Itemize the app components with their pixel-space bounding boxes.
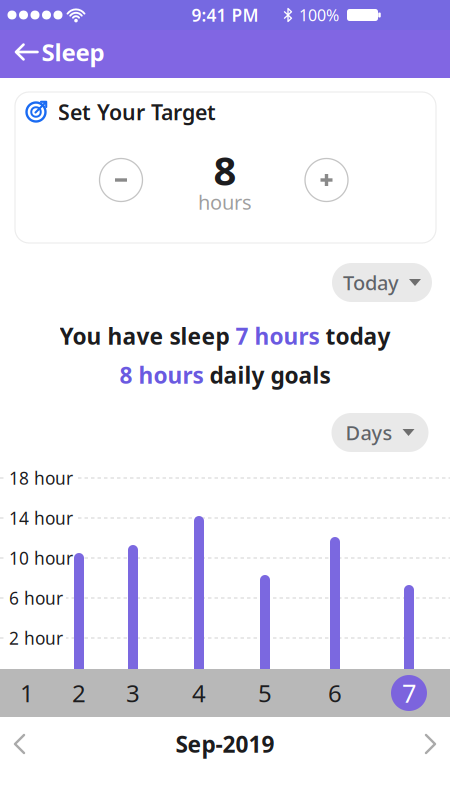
button[interactable]: 4 <box>182 676 216 710</box>
staticText: 9:41 PM <box>191 3 258 26</box>
staticText: You have sleep <box>59 321 235 351</box>
staticText: 4 <box>192 677 206 709</box>
staticText: today <box>319 321 390 351</box>
staticText: daily goals <box>203 360 330 390</box>
staticText: 6 <box>328 677 342 709</box>
button[interactable]: 2 <box>62 676 96 710</box>
button[interactable]: Days <box>331 413 428 452</box>
staticText: 7 hours <box>235 321 319 351</box>
staticText: Today <box>343 269 399 296</box>
button[interactable]: 6 <box>318 676 352 710</box>
button[interactable]: Decrease hours <box>99 158 142 201</box>
button[interactable]: Back <box>9 34 45 70</box>
staticText: Days <box>345 419 392 446</box>
button[interactable]: Previous month <box>8 732 32 756</box>
staticText: 7 <box>402 676 416 710</box>
button[interactable]: Next month <box>418 732 442 756</box>
button[interactable]: 5 <box>248 676 282 710</box>
staticText: Sleep <box>41 36 104 68</box>
staticText: 3 <box>126 677 140 709</box>
staticText: 5 <box>258 677 272 709</box>
button[interactable]: Today <box>332 263 432 302</box>
staticText: 2 hour <box>9 626 63 649</box>
staticText: hours <box>198 189 252 215</box>
staticText: 14 hour <box>9 506 73 529</box>
staticText: 8 hours <box>119 360 203 390</box>
button[interactable]: 7 <box>391 675 427 711</box>
staticText: 1 <box>20 677 34 709</box>
button[interactable]: 3 <box>116 676 150 710</box>
staticText: 100% <box>299 4 339 26</box>
staticText: 8 <box>213 143 236 196</box>
staticText: Sep-2019 <box>175 729 274 759</box>
staticText: 10 hour <box>9 546 73 569</box>
button[interactable]: 1 <box>10 676 44 710</box>
staticText: 2 <box>72 677 86 709</box>
staticText: Set Your Target <box>58 98 216 126</box>
staticText: 6 hour <box>9 586 63 609</box>
button[interactable]: Increase hours <box>305 158 348 201</box>
staticText: 18 hour <box>9 466 73 489</box>
